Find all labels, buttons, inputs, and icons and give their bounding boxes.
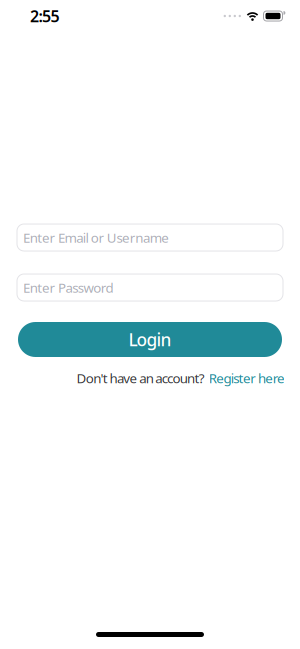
button[interactable]: Login <box>18 322 282 357</box>
button[interactable]: Enter Email or Username <box>17 224 283 251</box>
staticText: Register here <box>209 369 285 387</box>
staticText: Login <box>128 328 171 351</box>
staticText: 2:55 <box>30 5 59 27</box>
button[interactable]: Register here <box>209 369 285 387</box>
staticText: Enter Email or Username <box>23 229 169 246</box>
staticText: Enter Password <box>23 279 113 296</box>
staticText: Don't have an account? <box>76 369 205 387</box>
button[interactable]: Enter Password <box>17 274 283 301</box>
